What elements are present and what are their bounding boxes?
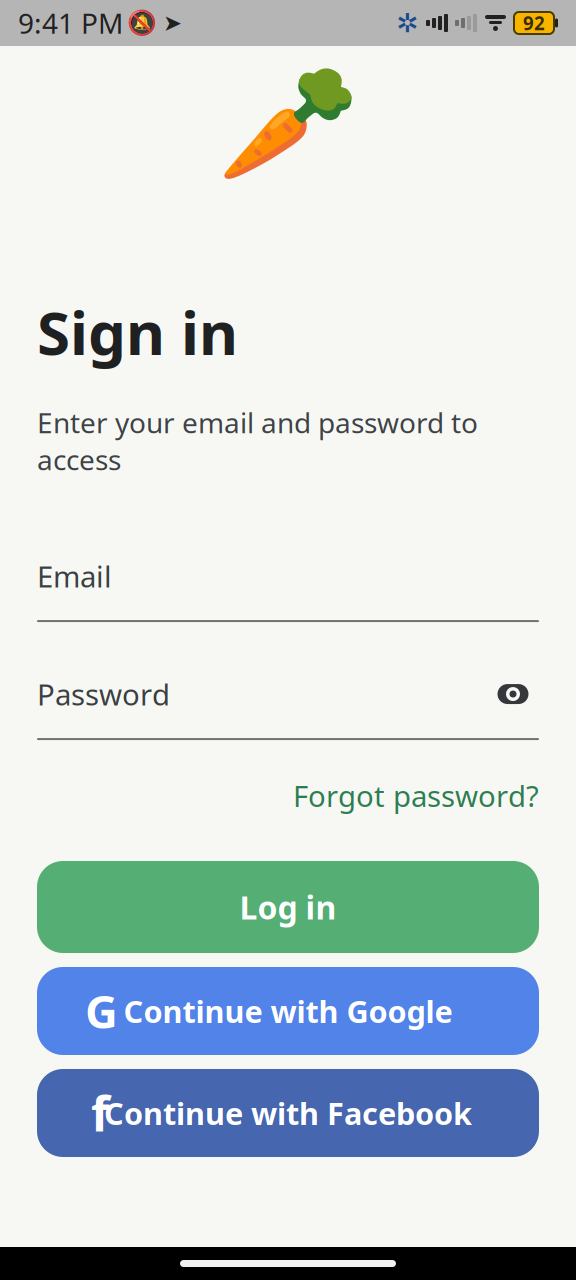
staticText: G xyxy=(85,981,118,1041)
staticText: Forgot password? xyxy=(293,776,539,815)
staticText: f xyxy=(91,1081,110,1145)
staticText: Log in xyxy=(239,886,336,928)
button[interactable]: Continue with Facebook xyxy=(37,1069,539,1157)
staticText: Email xyxy=(37,557,112,596)
button[interactable]: Log in xyxy=(37,861,539,953)
staticText: Password xyxy=(37,675,170,714)
staticText: ➤ xyxy=(163,10,182,36)
staticText: 92 xyxy=(523,11,545,35)
staticText: Continue with Google xyxy=(123,991,452,1031)
staticText: ✲ xyxy=(396,8,418,38)
staticText: 🔕 xyxy=(127,9,157,37)
button[interactable]: Show password xyxy=(487,674,539,714)
staticText: 🥕 xyxy=(216,58,359,189)
button[interactable]: Forgot password? xyxy=(293,770,539,821)
staticText: Enter your email and password to access xyxy=(37,404,478,478)
button[interactable]: Continue with Google xyxy=(37,967,539,1055)
staticText: Sign in xyxy=(37,292,238,372)
staticText: 9:41 PM xyxy=(18,4,123,42)
staticText: Continue with Facebook xyxy=(104,1093,472,1133)
